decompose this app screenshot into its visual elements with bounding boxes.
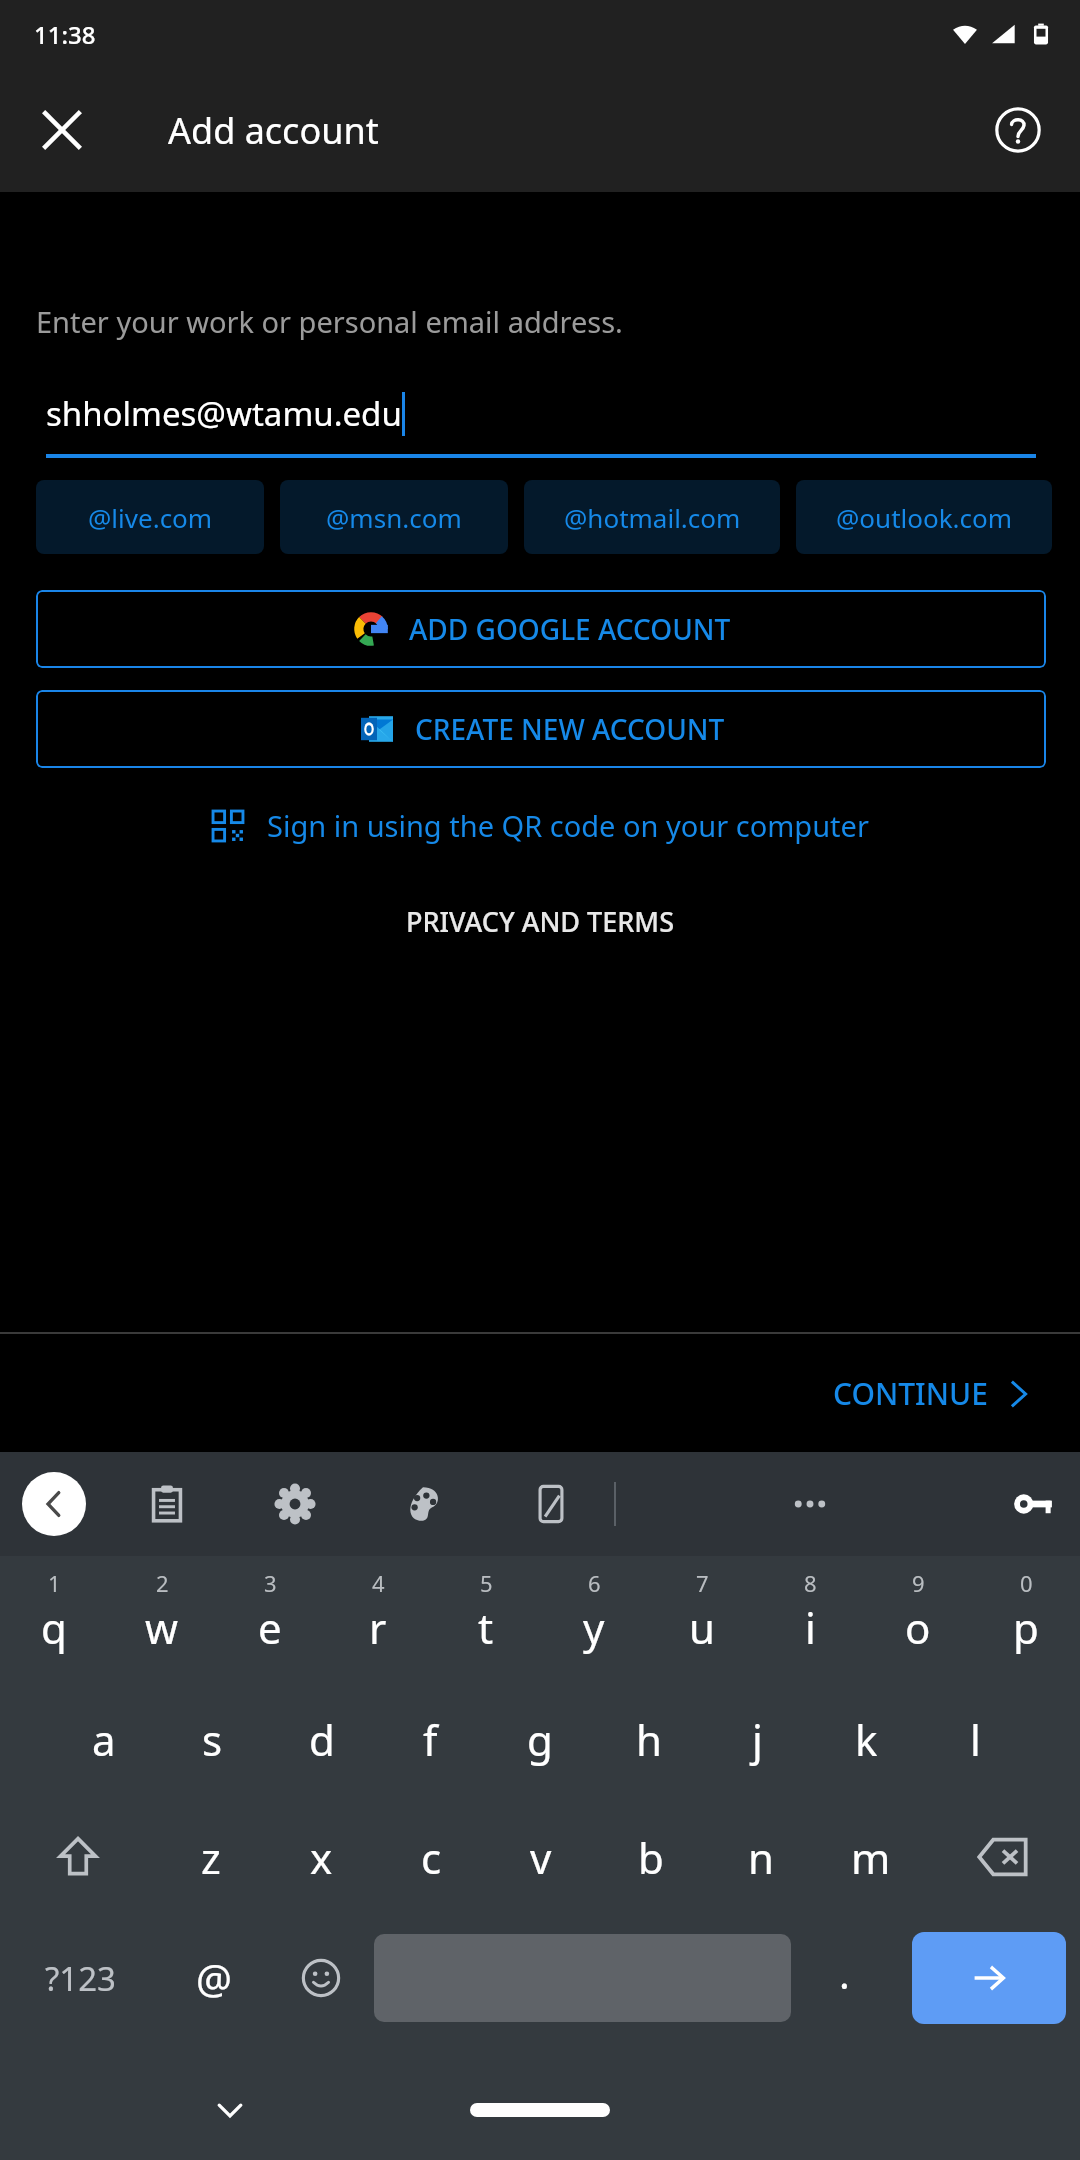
staticText: q <box>41 1599 67 1656</box>
button[interactable]: 5 <box>432 1556 540 1680</box>
button[interactable]: @outlook.com <box>796 480 1052 554</box>
button[interactable]: x <box>266 1798 376 1916</box>
staticText: 1 <box>48 1568 61 1598</box>
button[interactable]: 4 <box>324 1556 432 1680</box>
button[interactable]: Sign in using the QR code on your comput… <box>0 806 1080 845</box>
button[interactable]: Enter <box>912 1932 1066 2024</box>
staticText: r <box>369 1599 387 1656</box>
staticText: ?123 <box>45 1956 116 2001</box>
button[interactable]: l <box>921 1680 1030 1798</box>
button[interactable]: Backspace <box>926 1798 1080 1916</box>
button[interactable]: Hide keyboard <box>200 2080 260 2140</box>
staticText: CONTINUE <box>833 1373 988 1414</box>
button[interactable]: CONTINUE <box>817 1361 1050 1426</box>
staticText: u <box>689 1599 715 1656</box>
staticText: a <box>92 1711 116 1768</box>
button[interactable]: ?123 <box>0 1916 160 2040</box>
button[interactable]: Help <box>978 90 1058 170</box>
staticText: g <box>527 1711 553 1768</box>
staticText: 5 <box>480 1568 493 1598</box>
staticText: c <box>421 1829 442 1886</box>
staticText: @outlook.com <box>836 500 1013 535</box>
button[interactable]: h <box>594 1680 703 1798</box>
staticText: l <box>970 1711 981 1768</box>
button[interactable]: 8 <box>756 1556 864 1680</box>
staticText: n <box>748 1829 774 1886</box>
staticText: 0 <box>1020 1568 1033 1598</box>
button[interactable]: 0 <box>972 1556 1080 1680</box>
button[interactable]: 7 <box>648 1556 756 1680</box>
staticText: t <box>478 1599 494 1656</box>
staticText: o <box>905 1599 931 1656</box>
button[interactable]: . <box>791 1916 898 2040</box>
staticText: e <box>258 1599 282 1656</box>
staticText: ADD GOOGLE ACCOUNT <box>409 610 731 648</box>
button[interactable]: @live.com <box>36 480 264 554</box>
staticText: 6 <box>588 1568 601 1598</box>
staticText: @live.com <box>88 500 213 535</box>
button[interactable]: k <box>812 1680 921 1798</box>
button[interactable]: d <box>267 1680 376 1798</box>
button[interactable]: Password <box>1004 1475 1062 1533</box>
button[interactable]: @ <box>160 1916 267 2040</box>
staticText: CREATE NEW ACCOUNT <box>415 710 725 748</box>
button[interactable]: c <box>376 1798 486 1916</box>
staticText: z <box>201 1829 221 1886</box>
staticText: m <box>851 1829 891 1886</box>
button[interactable]: m <box>816 1798 926 1916</box>
staticText: Sign in using the QR code on your comput… <box>267 806 869 845</box>
button[interactable]: Shift <box>0 1798 155 1916</box>
staticText: y <box>583 1599 605 1656</box>
button[interactable]: 3 <box>216 1556 324 1680</box>
button[interactable]: v <box>486 1798 596 1916</box>
button[interactable]: Back <box>22 1472 86 1536</box>
button[interactable]: 2 <box>108 1556 216 1680</box>
button[interactable]: Settings <box>266 1475 324 1533</box>
staticText: . <box>839 1946 850 2000</box>
button[interactable]: Theme <box>394 1475 452 1533</box>
button[interactable]: CREATE NEW ACCOUNT <box>36 690 1046 768</box>
button[interactable]: z <box>155 1798 266 1916</box>
staticText: x <box>310 1829 333 1886</box>
button[interactable]: Emoji <box>267 1916 374 2040</box>
staticText: 9 <box>912 1568 925 1598</box>
staticText: j <box>752 1711 763 1768</box>
button[interactable]: b <box>596 1798 706 1916</box>
button[interactable]: 9 <box>864 1556 972 1680</box>
staticText: Enter your work or personal email addres… <box>36 302 623 341</box>
staticText: @msn.com <box>326 500 462 535</box>
button[interactable]: @msn.com <box>280 480 508 554</box>
button[interactable]: 1 <box>0 1556 108 1680</box>
staticText: 3 <box>264 1568 277 1598</box>
button[interactable]: j <box>703 1680 812 1798</box>
button[interactable]: g <box>485 1680 594 1798</box>
staticText: i <box>805 1599 816 1656</box>
button[interactable]: More options <box>781 1475 839 1533</box>
button[interactable]: f <box>376 1680 485 1798</box>
staticText: Add account <box>168 106 379 155</box>
button[interactable]: @hotmail.com <box>524 480 780 554</box>
staticText: w <box>145 1599 179 1656</box>
button[interactable]: ADD GOOGLE ACCOUNT <box>36 590 1046 668</box>
staticText: p <box>1013 1599 1039 1656</box>
button[interactable]: Clipboard <box>138 1475 196 1533</box>
button[interactable]: Close <box>22 90 102 170</box>
button[interactable]: One handed mode <box>522 1475 580 1533</box>
staticText: d <box>309 1711 335 1768</box>
staticText: shholmes@wtamu.edu <box>46 391 402 436</box>
staticText: @hotmail.com <box>564 500 741 535</box>
staticText: h <box>636 1711 662 1768</box>
staticText: @ <box>196 1951 232 2005</box>
button[interactable]: PRIVACY AND TERMS <box>398 895 683 948</box>
staticText: 8 <box>804 1568 817 1598</box>
button[interactable]: a <box>50 1680 158 1798</box>
button[interactable]: 6 <box>540 1556 648 1680</box>
staticText: 2 <box>156 1568 169 1598</box>
button[interactable]: n <box>706 1798 816 1916</box>
staticText: k <box>855 1711 878 1768</box>
button[interactable]: s <box>158 1680 267 1798</box>
staticText: s <box>202 1711 223 1768</box>
staticText: f <box>423 1711 438 1768</box>
staticText: 7 <box>696 1568 709 1598</box>
